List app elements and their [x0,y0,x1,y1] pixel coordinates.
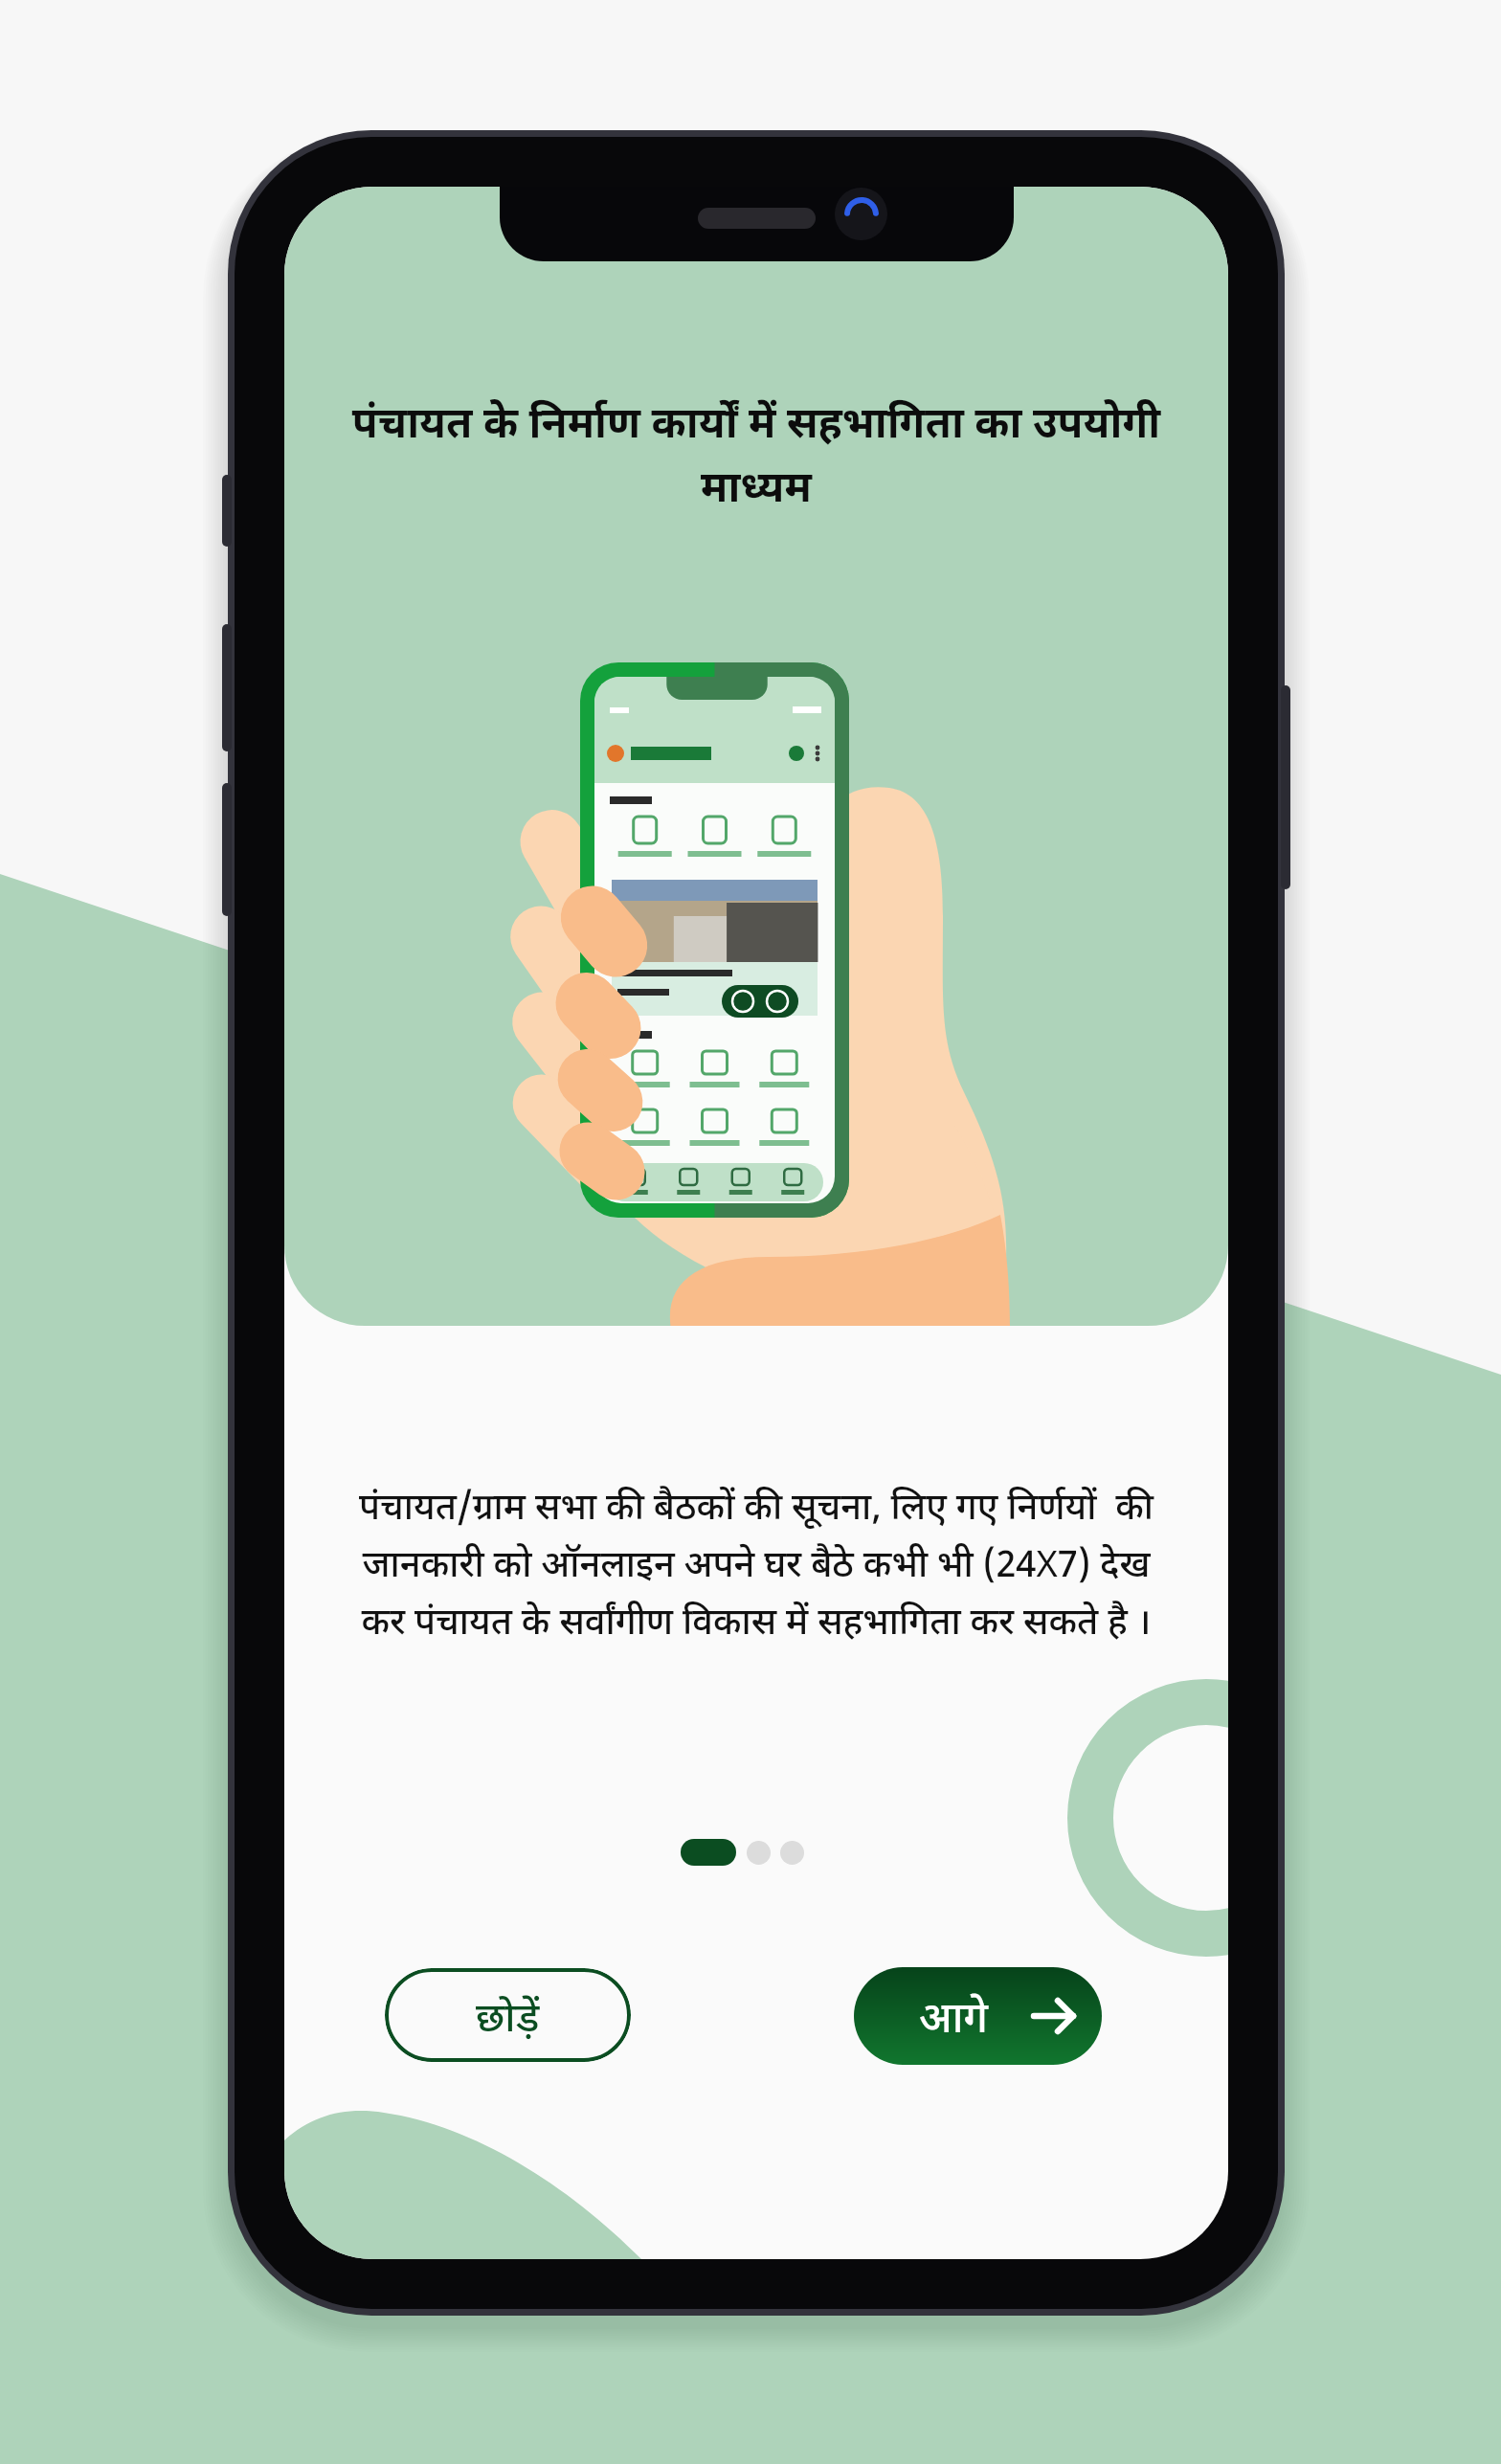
button[interactable]: छोड़ें [385,1968,631,2062]
staticText: पंचायत/ग्राम सभा की बैठकों की सूचना, लिए… [349,1480,1163,1645]
button[interactable]: Go to page 2 [747,1841,771,1865]
button[interactable]: Next [854,1967,1102,2065]
staticText: पंचायत के निर्माण कार्यों में सहभागिता क… [323,392,1190,513]
staticText: छोड़ें [476,1988,540,2043]
button[interactable]: Go to page 3 [780,1841,804,1865]
button[interactable]: Page 1 of 3, selected [681,1839,736,1866]
staticText: आगे [919,1987,988,2045]
